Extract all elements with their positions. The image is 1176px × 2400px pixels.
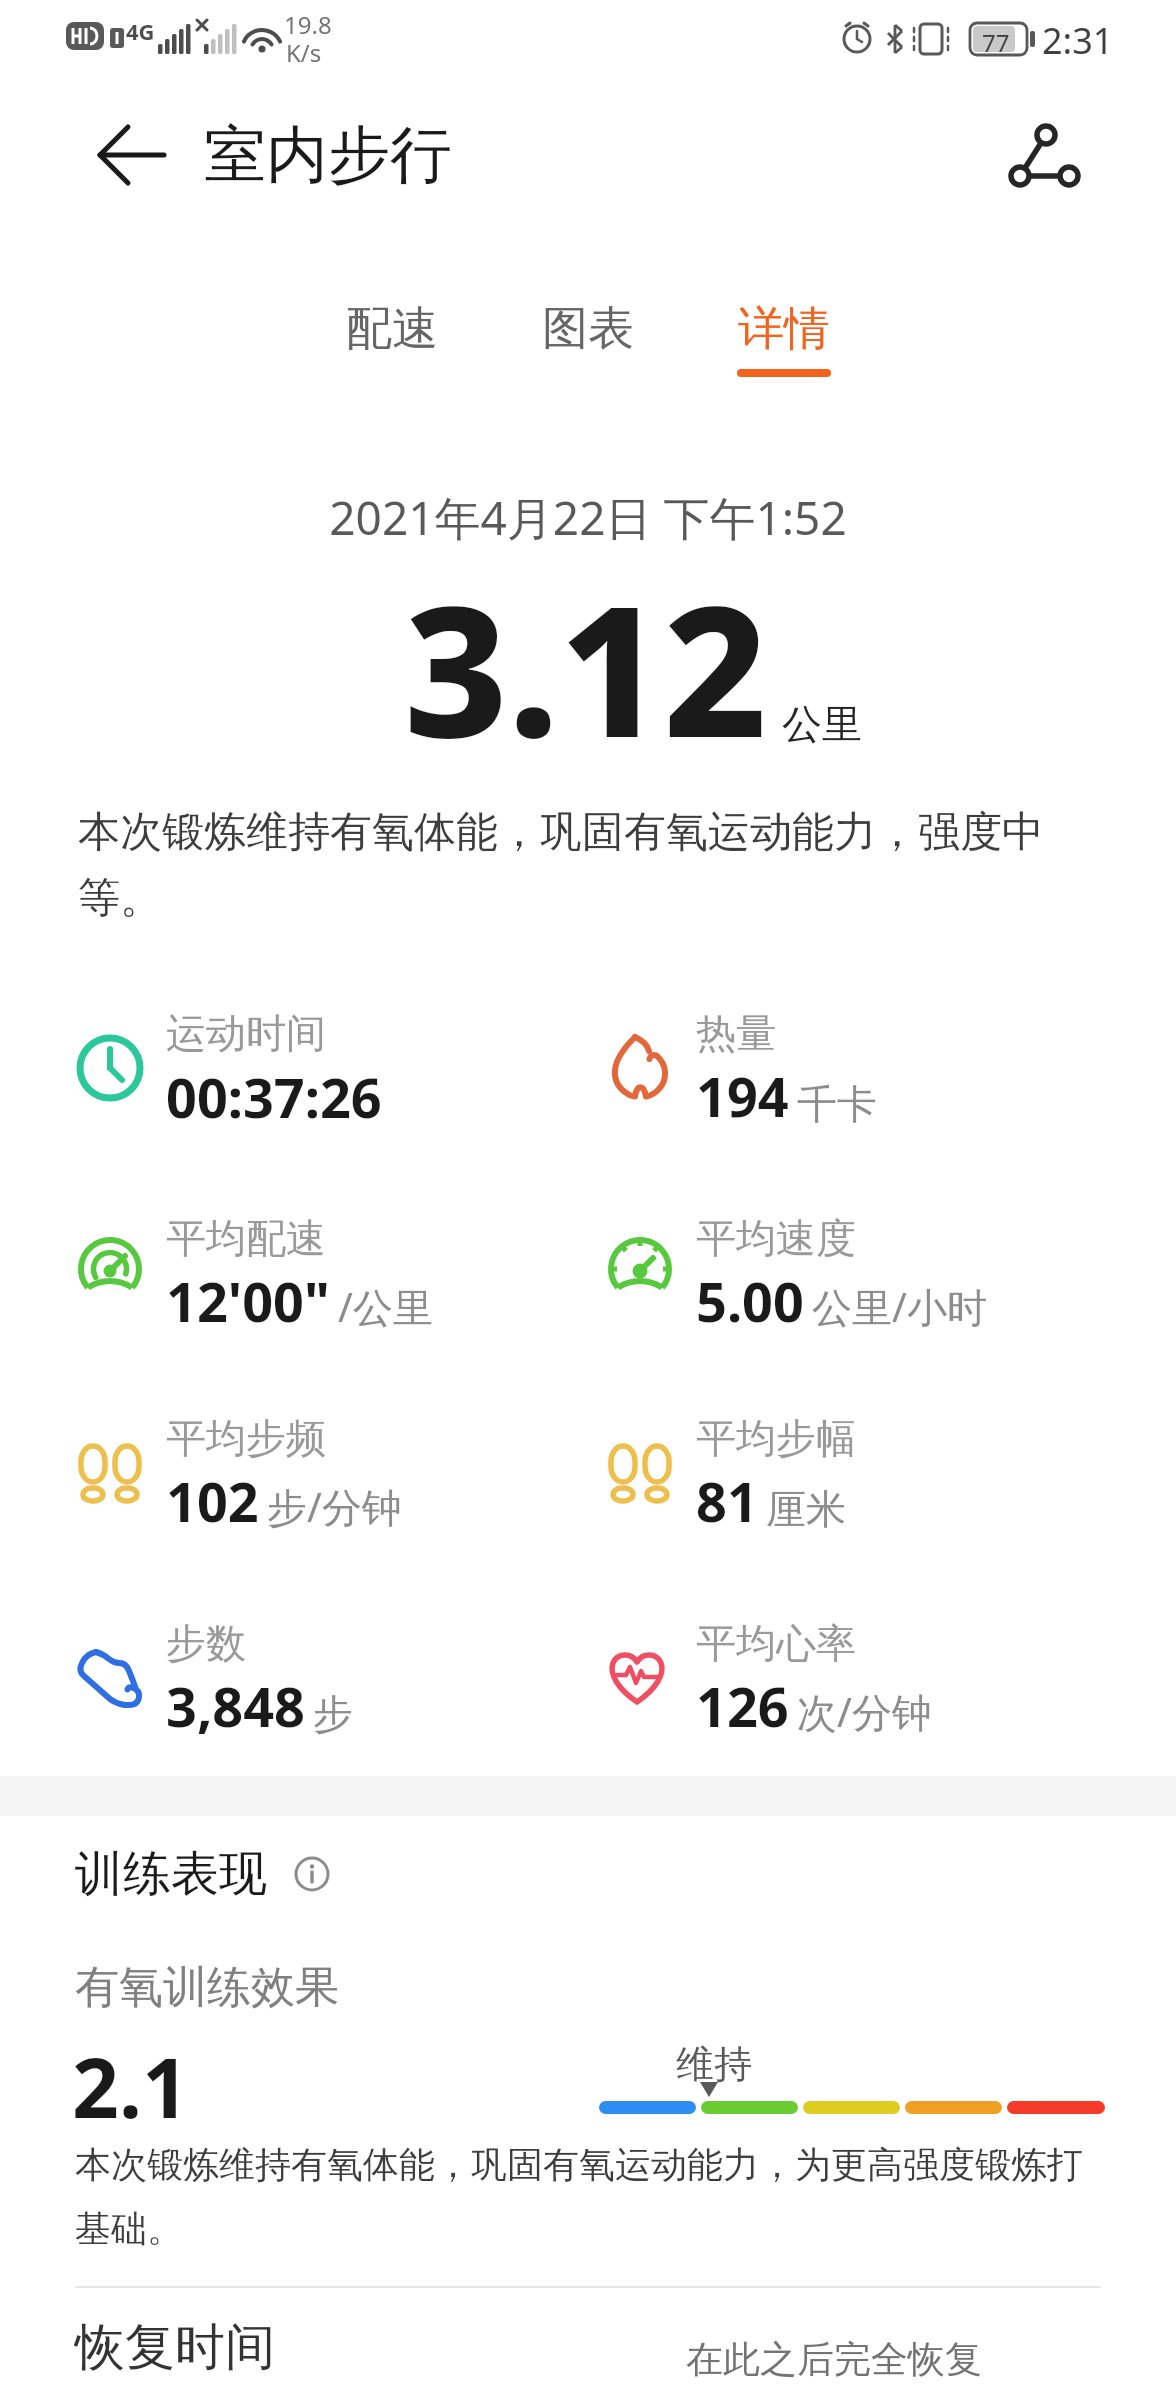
button[interactable]: 图表 (490, 300, 686, 377)
staticText: 平均步频 (166, 1413, 326, 1463)
staticText: 81 (696, 1464, 758, 1532)
staticText: 配速 (346, 300, 438, 358)
staticText: 平均配速 (166, 1213, 326, 1263)
button[interactable] (293, 1855, 331, 1893)
staticText: 本次锻炼维持有氧体能，巩固有氧运动能力，为更高强度锻炼打 基础。 (75, 2142, 1083, 2251)
staticText: 恢复时间 (75, 2316, 275, 2379)
staticText: 本次锻炼维持有氧体能，巩固有氧运动能力，强度中 等。 (78, 806, 1044, 925)
staticText: 194 (696, 1059, 789, 1127)
staticText: 热量 (696, 1008, 776, 1058)
button[interactable] (995, 110, 1090, 200)
staticText: 平均速度 (696, 1213, 856, 1263)
staticText: 次/分钟 (797, 1684, 932, 1739)
staticText: 千卡 (797, 1079, 877, 1129)
staticText: 2:31 (1042, 16, 1114, 65)
staticText: 12'00" (166, 1264, 330, 1332)
staticText: 有氧训练效果 (75, 1960, 339, 2015)
staticText: 4G (126, 16, 155, 46)
staticText: 步/分钟 (267, 1479, 402, 1534)
staticText: 步数 (166, 1618, 246, 1668)
staticText: 运动时间 (166, 1008, 326, 1058)
staticText: 室内步行 (204, 116, 452, 194)
staticText: 77 (982, 26, 1010, 59)
staticText: 2.1 (72, 2030, 189, 2142)
button[interactable]: 详情 (686, 300, 882, 377)
staticText: 详情 (738, 300, 830, 358)
staticText: 5.00 (696, 1264, 804, 1332)
staticText: 维持 (676, 2040, 752, 2088)
staticText: 3,848 (166, 1669, 305, 1737)
button[interactable] (80, 115, 180, 195)
staticText: 102 (166, 1464, 259, 1532)
staticText: 19.8 (284, 8, 332, 41)
staticText: 00:37:26 (166, 1060, 382, 1128)
staticText: 3.12 (404, 545, 768, 790)
staticText: K/s (286, 36, 322, 69)
staticText: 在此之后完全恢复 (686, 2336, 982, 2383)
staticText: 训练表现 (75, 1844, 267, 1904)
button[interactable]: 配速 (294, 300, 490, 377)
staticText: 公里/小时 (812, 1279, 987, 1334)
staticText: /公里 (338, 1279, 433, 1334)
staticText: 公里 (782, 699, 862, 749)
staticText: 平均心率 (696, 1618, 856, 1668)
staticText: 步 (313, 1689, 353, 1739)
staticText: 厘米 (766, 1484, 846, 1534)
staticText: 平均步幅 (696, 1413, 856, 1463)
staticText: 图表 (542, 300, 634, 358)
staticText: 126 (696, 1669, 789, 1737)
staticText: 2021年4月22日 下午1:52 (0, 486, 1176, 549)
